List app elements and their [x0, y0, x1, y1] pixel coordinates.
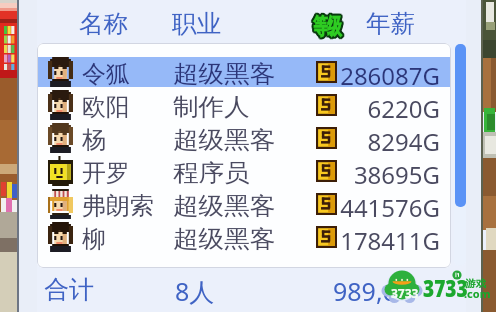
staticText: 超级黑客	[173, 59, 275, 89]
staticText: 441576G	[37, 191, 440, 224]
staticText: 等级	[311, 14, 339, 42]
staticText: 等级	[312, 14, 340, 42]
staticText: 等级	[313, 12, 341, 40]
staticText: 8人	[175, 274, 215, 308]
staticText: 3733	[423, 273, 468, 304]
staticText: 等级	[312, 15, 340, 43]
staticText: 超级黑客	[173, 224, 275, 254]
staticText: 制作人	[173, 92, 250, 122]
staticText: 等级	[311, 12, 339, 40]
staticText: 等级	[314, 13, 342, 41]
button[interactable]: 杨	[37, 121, 451, 154]
staticText: 等级	[311, 13, 339, 41]
staticText: 178411G	[37, 224, 440, 257]
staticText: 等级	[312, 11, 340, 39]
staticText: 超级黑客	[173, 125, 275, 155]
staticText: 杨	[82, 125, 106, 155]
button[interactable]: 开罗	[37, 154, 451, 187]
staticText: .com	[464, 286, 491, 301]
staticText: 等级	[313, 11, 341, 39]
staticText: 等级	[314, 14, 342, 42]
button[interactable]: 欧阳	[37, 88, 451, 121]
staticText: 8294G	[37, 125, 440, 158]
button[interactable]: 令狐	[37, 55, 451, 88]
staticText: 等级	[314, 11, 342, 39]
staticText: 等级	[313, 15, 341, 43]
staticText: 游戏	[465, 277, 486, 289]
staticText: 等级	[313, 13, 341, 41]
staticText: 合计	[44, 274, 94, 305]
staticText: 3733	[391, 284, 419, 301]
staticText: 等级	[314, 12, 342, 40]
staticText: 等级	[313, 14, 341, 42]
staticText: 令狐	[82, 59, 130, 89]
staticText: 开罗	[82, 158, 130, 188]
staticText: 等级	[315, 14, 343, 42]
staticText: 等级	[314, 15, 342, 43]
staticText: 等级	[312, 13, 340, 41]
staticText: 名称	[79, 8, 128, 39]
staticText: 286087G	[37, 59, 440, 92]
staticText: 等级	[315, 13, 343, 41]
staticText: 职业	[172, 8, 221, 39]
staticText: 年薪	[366, 8, 415, 39]
staticText: 38695G	[37, 158, 440, 191]
staticText: 等级	[312, 12, 340, 40]
staticText: 等级	[315, 12, 343, 40]
staticText: 柳	[82, 224, 106, 254]
staticText: 989,6	[333, 274, 397, 308]
button[interactable]: 柳	[37, 220, 451, 253]
staticText: 超级黑客	[173, 191, 275, 221]
staticText: 欧阳	[82, 92, 130, 122]
button[interactable]: 弗朗索	[37, 187, 451, 220]
staticText: 弗朗索	[82, 191, 154, 221]
staticText: 程序员	[173, 158, 250, 188]
staticText: 6220G	[37, 92, 440, 125]
